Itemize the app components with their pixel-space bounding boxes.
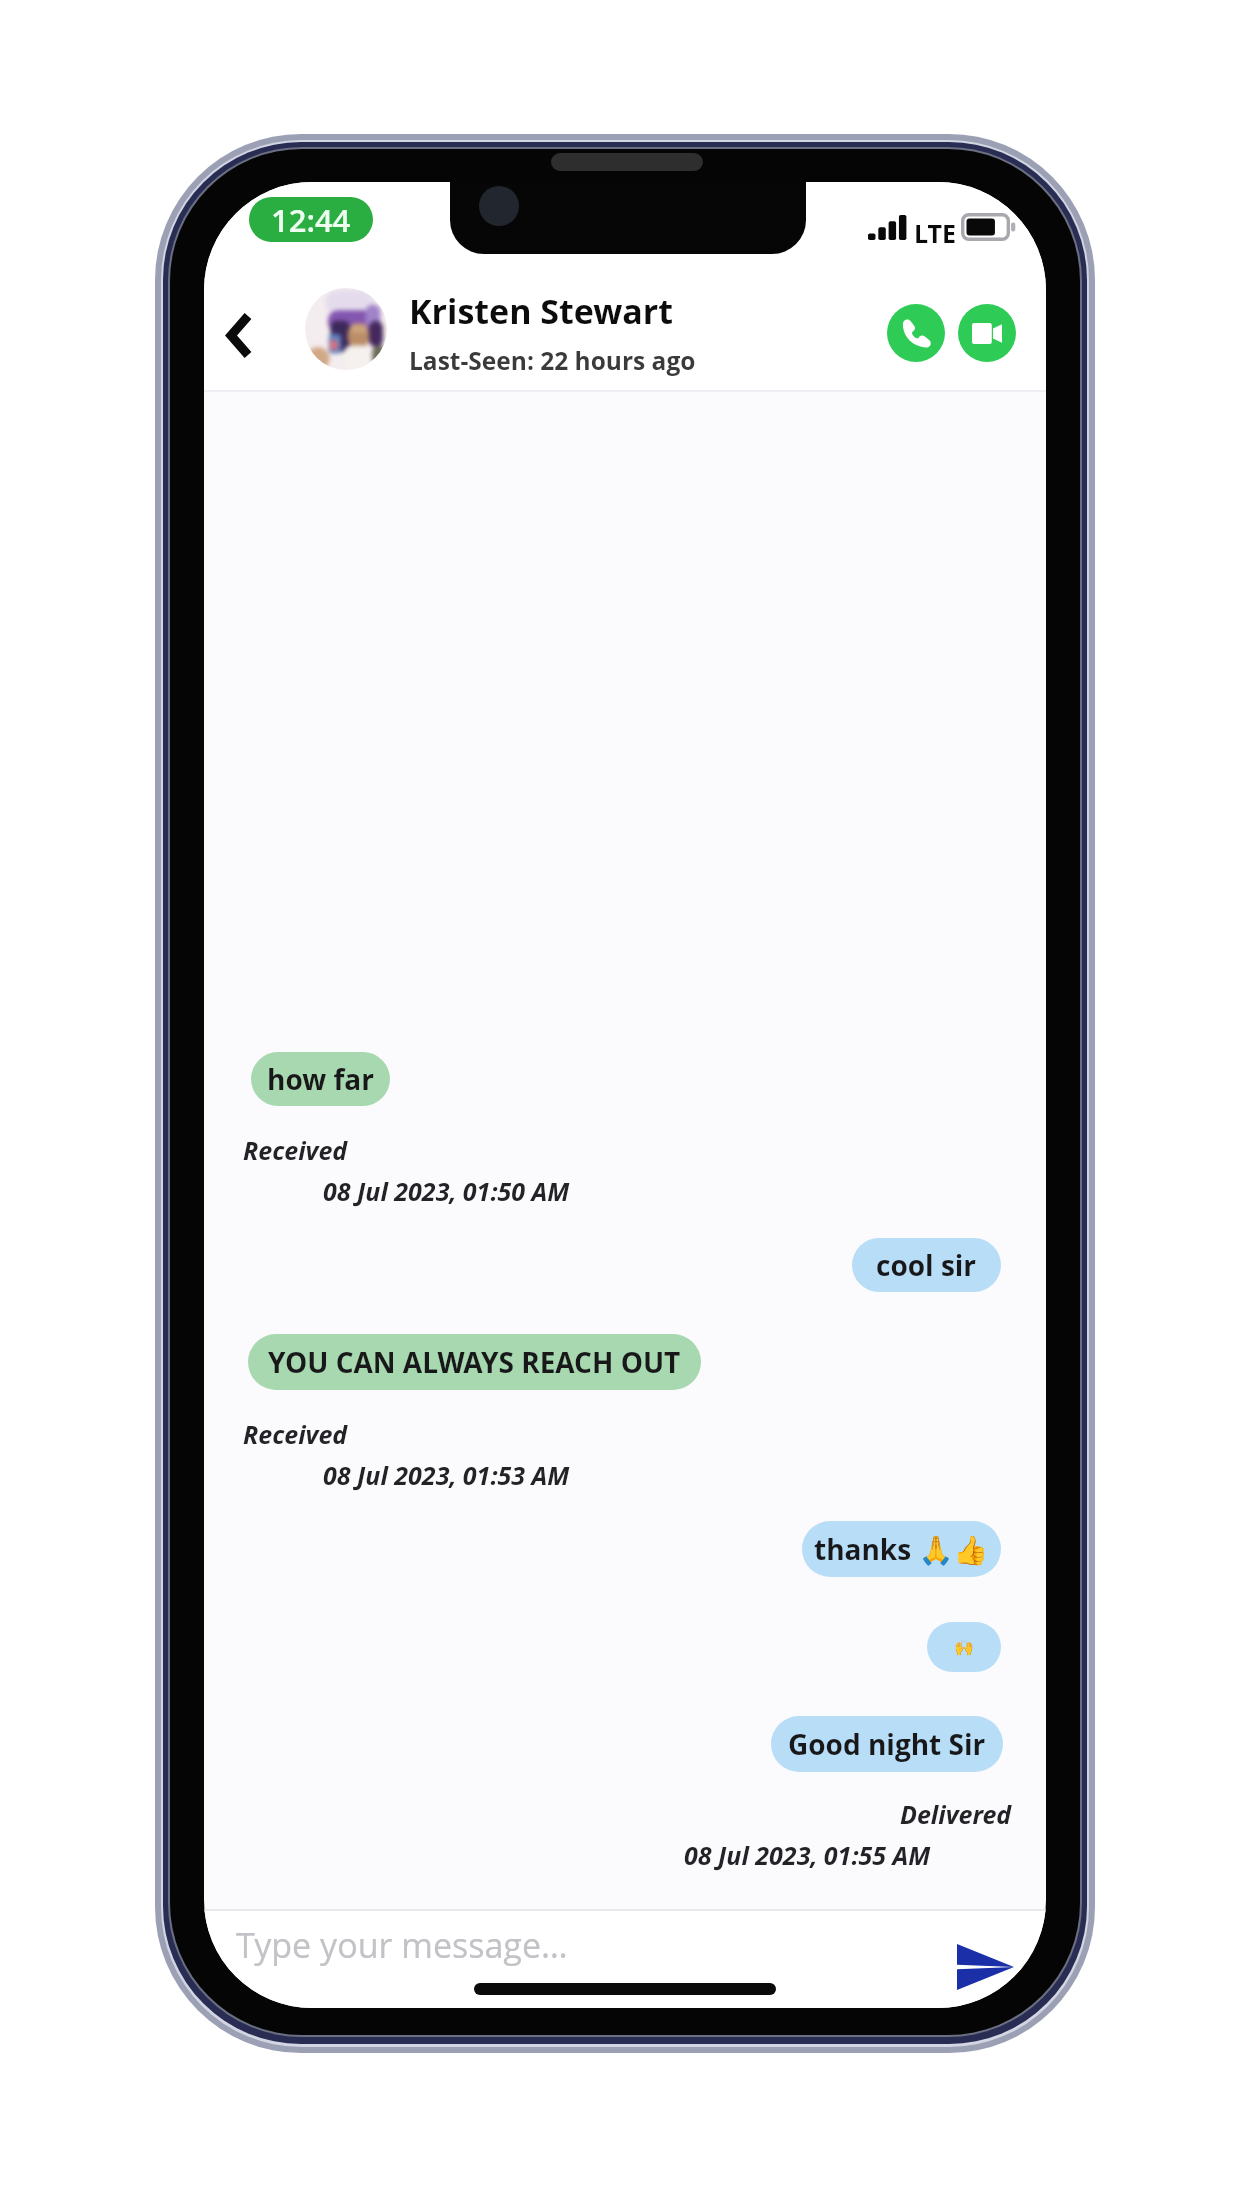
staticText: Delivered: [900, 1797, 1012, 1831]
staticText: Good night Sir: [788, 1725, 986, 1763]
button[interactable]: thanks 🙏👍: [802, 1521, 1001, 1577]
staticText: 🙌: [954, 1638, 974, 1657]
staticText: Received: [243, 1133, 348, 1167]
button[interactable]: 🙌: [927, 1622, 1001, 1672]
button[interactable]: Send: [942, 1930, 1028, 2004]
staticText: Received: [243, 1417, 348, 1451]
staticText: 08 Jul 2023, 01:53 AM: [323, 1458, 570, 1492]
staticText: cool sir: [876, 1246, 977, 1284]
staticText: 08 Jul 2023, 01:50 AM: [323, 1174, 570, 1208]
staticText: Kristen Stewart: [409, 288, 674, 334]
staticText: 12:44: [271, 199, 351, 241]
button[interactable]: Type your message…: [204, 1911, 1046, 2008]
staticText: YOU CAN ALWAYS REACH OUT: [268, 1343, 681, 1381]
button[interactable]: Video call: [958, 304, 1016, 362]
button[interactable]: Back: [204, 296, 274, 374]
staticText: LTE: [914, 216, 957, 250]
button[interactable]: cool sir: [852, 1238, 1001, 1292]
button[interactable]: Good night Sir: [771, 1716, 1003, 1772]
staticText: Type your message…: [236, 1922, 568, 1968]
button[interactable]: how far: [251, 1052, 390, 1106]
button[interactable]: Voice call: [887, 304, 945, 362]
button[interactable]: YOU CAN ALWAYS REACH OUT: [248, 1334, 701, 1390]
staticText: thanks 🙏👍: [814, 1530, 989, 1568]
staticText: 08 Jul 2023, 01:55 AM: [684, 1838, 931, 1872]
staticText: Last-Seen: 22 hours ago: [409, 344, 696, 377]
staticText: how far: [267, 1060, 374, 1098]
